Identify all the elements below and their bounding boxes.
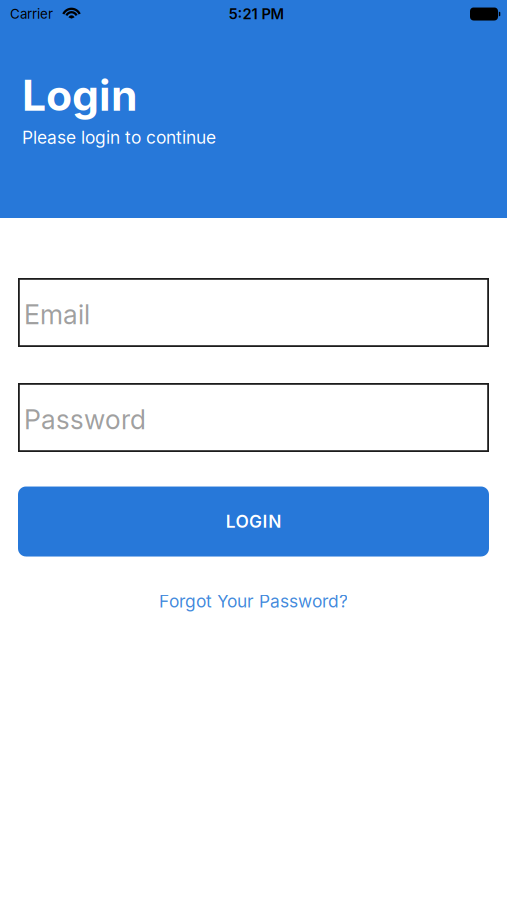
staticText: Forgot Your Password? bbox=[159, 591, 348, 611]
staticText: Login bbox=[22, 70, 138, 120]
staticText: 5:21 PM bbox=[228, 5, 284, 23]
staticText: Password bbox=[24, 404, 146, 435]
staticText: Carrier bbox=[10, 6, 53, 22]
staticText: Please login to continue bbox=[22, 127, 216, 148]
staticText: LOGIN bbox=[226, 511, 281, 532]
staticText: Email bbox=[24, 299, 90, 330]
